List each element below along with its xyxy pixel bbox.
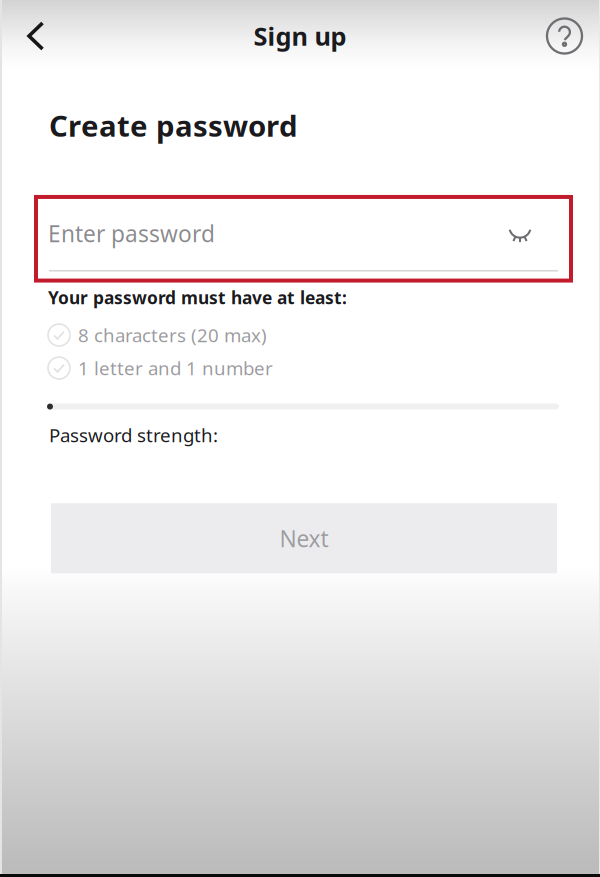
button[interactable]: Next xyxy=(51,503,557,573)
staticText: Enter password xyxy=(48,218,215,248)
staticText: Password strength: xyxy=(49,423,218,447)
button[interactable]: Show password xyxy=(507,224,533,242)
button[interactable]: Back xyxy=(0,0,71,72)
staticText: 1 letter and 1 number xyxy=(78,356,273,380)
staticText: Your password must have at least: xyxy=(48,286,347,309)
staticText: 8 characters (20 max) xyxy=(78,323,267,347)
button[interactable]: Help xyxy=(529,0,600,72)
staticText: Sign up xyxy=(253,19,346,53)
staticText: Create password xyxy=(49,106,298,145)
staticText: Next xyxy=(279,523,328,553)
